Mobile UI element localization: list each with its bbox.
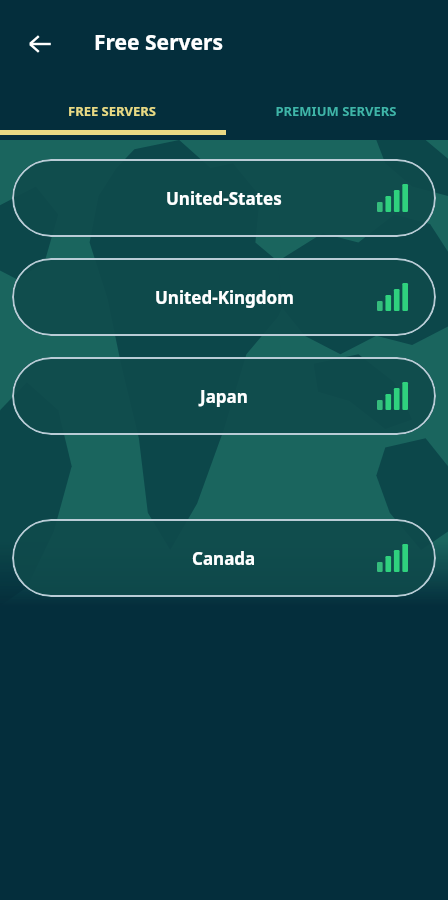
button[interactable]: PREMIUM SERVERS [224, 88, 448, 134]
button[interactable]: FREE SERVERS [0, 88, 224, 134]
button[interactable]: United-Kingdom [12, 258, 436, 336]
staticText: FREE SERVERS [68, 102, 156, 120]
button[interactable]: Back [20, 24, 60, 64]
button[interactable]: Japan [12, 357, 436, 435]
button[interactable]: United-States [12, 159, 436, 237]
button[interactable]: Canada [12, 519, 436, 597]
staticText: United-Kingdom [155, 286, 294, 309]
staticText: Japan [200, 385, 248, 408]
staticText: Canada [192, 547, 256, 570]
staticText: United-States [166, 187, 282, 210]
staticText: Free Servers [94, 28, 223, 57]
staticText: PREMIUM SERVERS [275, 102, 397, 120]
